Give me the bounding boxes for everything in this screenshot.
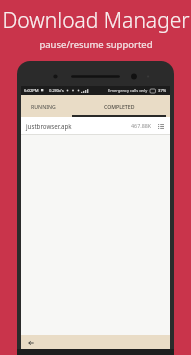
staticText: Download Manager xyxy=(2,6,190,35)
button[interactable]: RUNNING xyxy=(27,95,60,117)
button[interactable]: COMPLETED xyxy=(68,95,170,117)
staticText: COMPLETED xyxy=(104,103,135,110)
staticText: 0.2Kb/s xyxy=(49,88,64,94)
button[interactable]: More options xyxy=(156,121,165,130)
staticText: 467.88K xyxy=(131,122,152,129)
button[interactable]: Back xyxy=(25,337,36,348)
staticText: 6:02PM xyxy=(24,88,39,94)
staticText: Emergency calls only xyxy=(108,88,148,93)
staticText: RUNNING xyxy=(31,103,56,110)
staticText: 37% xyxy=(158,88,167,94)
staticText: justbrowser.apk xyxy=(26,122,72,130)
staticText: pause/resume supported xyxy=(39,38,153,51)
button[interactable]: justbrowser.apk xyxy=(21,117,170,134)
